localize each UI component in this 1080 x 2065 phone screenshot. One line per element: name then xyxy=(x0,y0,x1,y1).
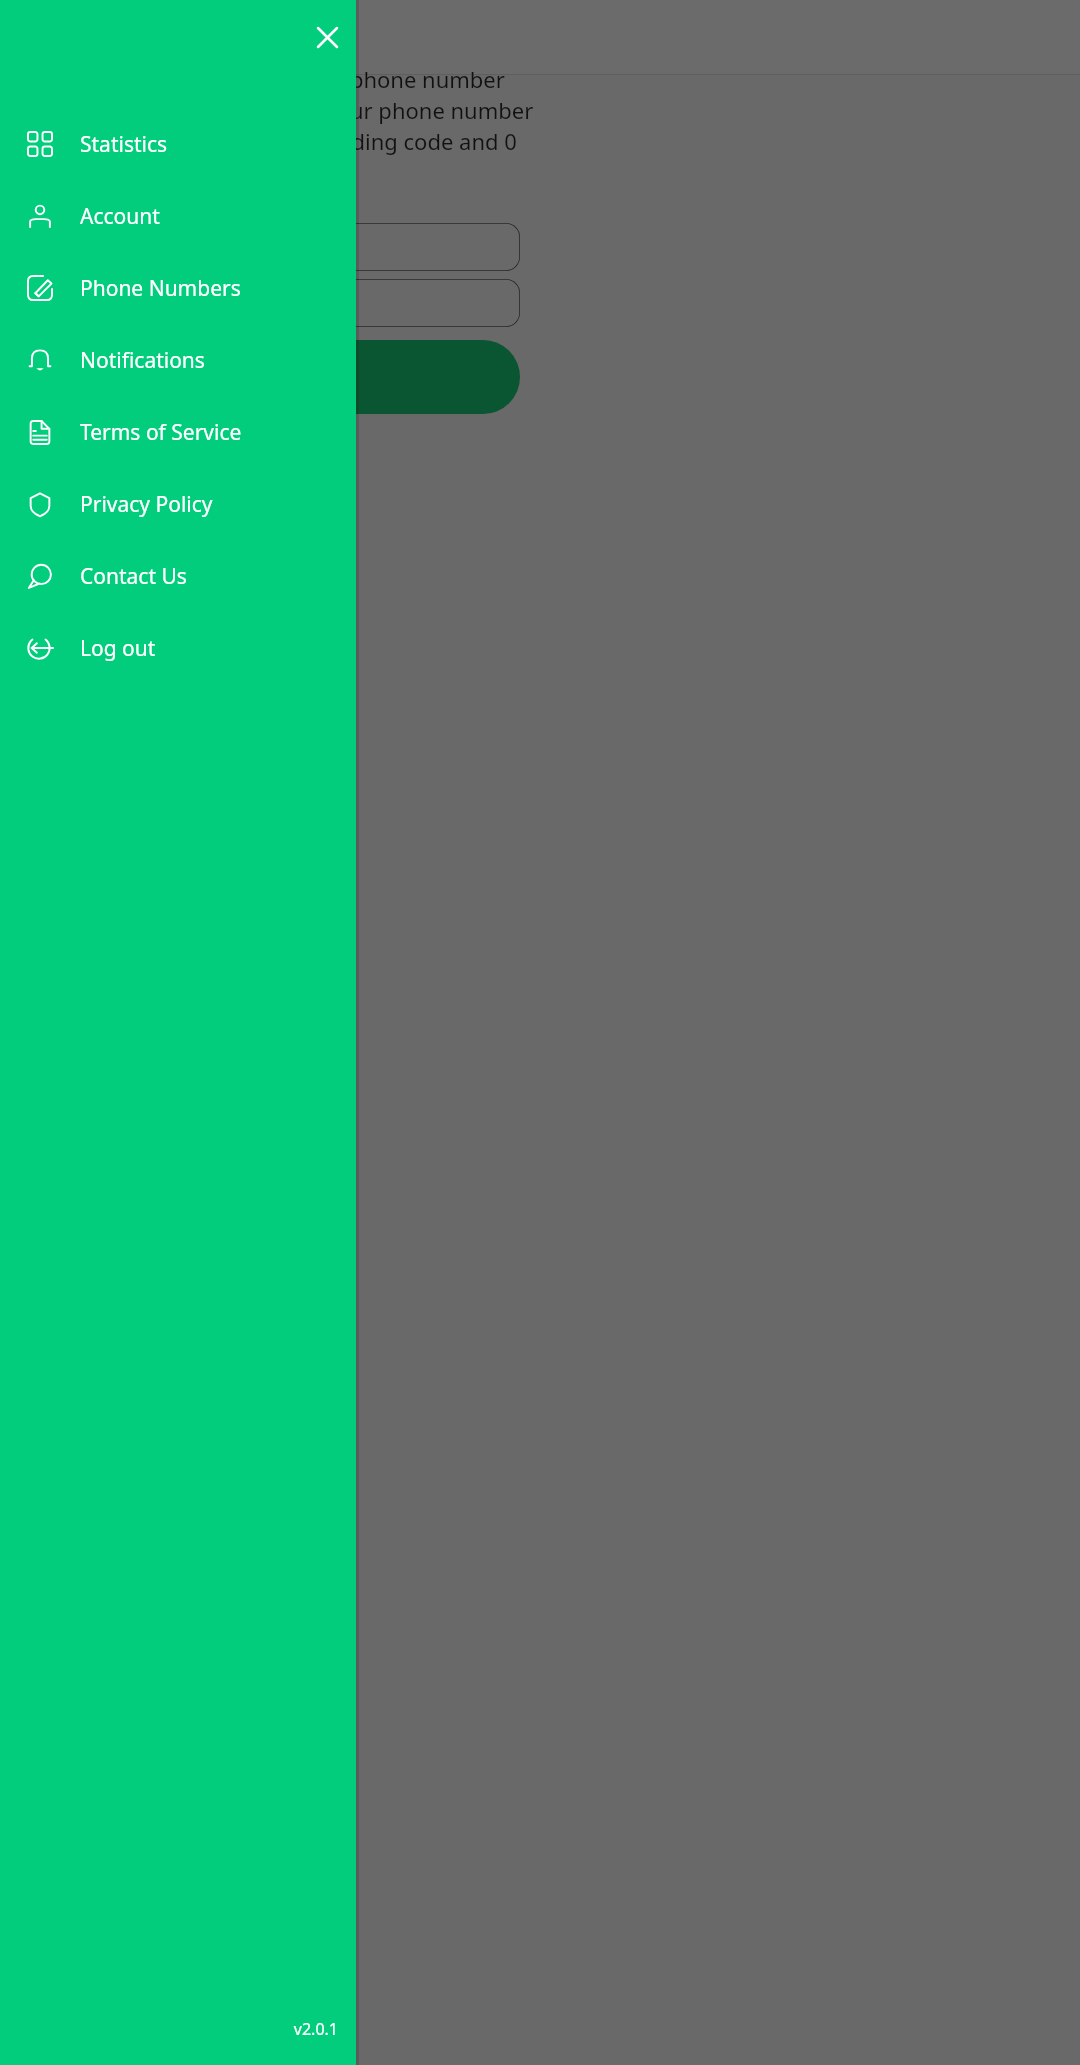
button[interactable]: Notifications xyxy=(0,324,356,396)
staticText: Contact Us xyxy=(80,562,187,591)
staticText: Account xyxy=(80,202,160,231)
staticText: without leading code and 0 xyxy=(236,126,517,156)
staticText: Confirm your phone number xyxy=(236,95,534,125)
button[interactable]: Privacy Policy xyxy=(0,468,356,540)
staticText: Statistics xyxy=(80,130,168,159)
staticText: Enter your phone number xyxy=(236,64,505,94)
staticText: Terms of Service xyxy=(80,418,242,447)
button[interactable]: Log out xyxy=(0,612,356,684)
staticText: Log out xyxy=(80,634,156,663)
button[interactable]: Statistics xyxy=(0,108,356,180)
button[interactable]: Phone Numbers xyxy=(0,252,356,324)
staticText: v2.0.1 xyxy=(293,2018,338,2040)
button[interactable] xyxy=(214,340,520,414)
staticText: Notifications xyxy=(80,346,205,375)
staticText: Privacy Policy xyxy=(80,490,213,519)
button[interactable] xyxy=(276,279,520,327)
button[interactable]: Account xyxy=(0,180,356,252)
button[interactable] xyxy=(276,223,520,271)
staticText: Phone Numbers xyxy=(80,274,241,303)
button[interactable]: Terms of Service xyxy=(0,396,356,468)
button[interactable]: Close menu xyxy=(299,9,355,65)
button[interactable]: Contact Us xyxy=(0,540,356,612)
